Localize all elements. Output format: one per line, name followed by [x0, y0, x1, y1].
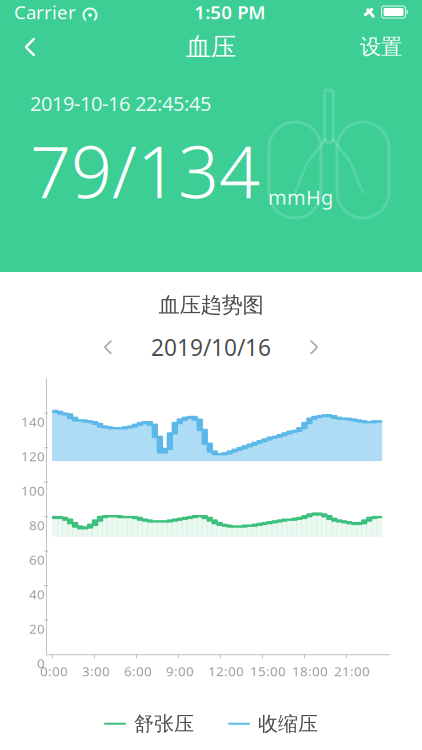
staticText: mmHg [268, 184, 333, 210]
staticText: 80 [29, 516, 45, 534]
staticText: 20 [29, 620, 45, 637]
button[interactable]: 前一天 [91, 330, 125, 364]
staticText: 18:00 [292, 662, 328, 680]
staticText: 21:00 [334, 662, 370, 680]
button[interactable]: 返回 [8, 27, 52, 67]
staticText: 0:00 [40, 662, 68, 680]
staticText: 设置 [360, 34, 402, 60]
staticText: 2019/10/16 [151, 332, 271, 362]
staticText: 收缩压 [258, 711, 318, 736]
staticText: 140 [21, 413, 45, 430]
staticText: 3:00 [82, 662, 110, 680]
staticText: 0 [37, 654, 45, 672]
staticText: 12:00 [208, 662, 244, 680]
button[interactable]: 设置 [348, 27, 414, 67]
staticText: 100 [21, 482, 45, 499]
staticText: 60 [29, 551, 45, 568]
staticText: 6:00 [124, 662, 152, 680]
staticText: 79/134 [30, 123, 260, 218]
staticText: 舒张压 [134, 711, 194, 736]
staticText: 40 [29, 585, 45, 603]
button[interactable]: 后一天 [297, 330, 331, 364]
staticText: 血压趋势图 [158, 292, 263, 318]
staticText: Carrier [14, 0, 76, 24]
staticText: 9:00 [166, 662, 194, 680]
staticText: 1:50 PM [194, 0, 265, 24]
staticText: 2019-10-16 22:45:45 [30, 90, 211, 117]
staticText: 120 [21, 447, 45, 465]
staticText: 血压 [186, 31, 236, 62]
staticText: 15:00 [250, 662, 286, 680]
